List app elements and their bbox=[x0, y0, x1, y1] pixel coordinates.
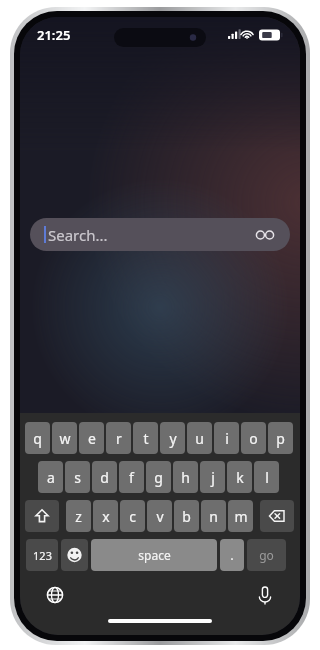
button[interactable]: Voice input bbox=[252, 582, 278, 608]
staticText: u bbox=[195, 429, 204, 448]
button[interactable]: a bbox=[38, 461, 63, 493]
staticText: t bbox=[143, 429, 149, 448]
staticText: n bbox=[209, 507, 218, 526]
button[interactable]: Backspace bbox=[260, 500, 294, 532]
button[interactable]: space bbox=[91, 539, 217, 571]
staticText: o bbox=[249, 429, 258, 448]
button[interactable]: . bbox=[220, 539, 244, 571]
staticText: h bbox=[181, 468, 190, 487]
staticText: e bbox=[88, 429, 96, 448]
staticText: i bbox=[225, 429, 229, 448]
staticText: 123 bbox=[33, 548, 52, 563]
button[interactable]: Shift bbox=[25, 500, 59, 532]
staticText: b bbox=[182, 507, 191, 526]
staticText: m bbox=[234, 507, 248, 526]
button[interactable]: p bbox=[268, 422, 293, 454]
button[interactable]: y bbox=[160, 422, 185, 454]
staticText: k bbox=[236, 468, 244, 487]
staticText: z bbox=[75, 507, 82, 526]
staticText: s bbox=[74, 468, 81, 487]
button[interactable]: Reader bbox=[254, 227, 276, 243]
button[interactable]: g bbox=[146, 461, 171, 493]
staticText: w bbox=[59, 429, 71, 448]
staticText: g bbox=[154, 468, 163, 487]
button[interactable]: j bbox=[200, 461, 225, 493]
staticText: x bbox=[102, 507, 110, 526]
staticText: y bbox=[169, 429, 177, 448]
button[interactable]: Emoji bbox=[61, 539, 88, 571]
button[interactable]: r bbox=[106, 422, 131, 454]
button[interactable]: b bbox=[174, 500, 199, 532]
staticText: l bbox=[265, 468, 269, 487]
staticText: . bbox=[230, 546, 234, 564]
button[interactable]: d bbox=[92, 461, 117, 493]
button[interactable]: t bbox=[133, 422, 158, 454]
staticText: a bbox=[47, 468, 55, 487]
button[interactable]: o bbox=[241, 422, 266, 454]
button[interactable]: n bbox=[201, 500, 226, 532]
button[interactable]: 123 bbox=[26, 539, 58, 571]
staticText: space bbox=[138, 547, 171, 563]
button[interactable]: x bbox=[93, 500, 118, 532]
button[interactable]: h bbox=[173, 461, 198, 493]
staticText: p bbox=[276, 429, 285, 448]
button[interactable]: u bbox=[187, 422, 212, 454]
button[interactable]: s bbox=[65, 461, 90, 493]
button[interactable]: v bbox=[147, 500, 172, 532]
button[interactable]: e bbox=[79, 422, 104, 454]
staticText: j bbox=[211, 468, 215, 487]
staticText: f bbox=[129, 468, 134, 487]
button[interactable]: m bbox=[228, 500, 253, 532]
button[interactable]: z bbox=[66, 500, 91, 532]
button[interactable]: c bbox=[120, 500, 145, 532]
staticText: d bbox=[100, 468, 109, 487]
staticText: Search... bbox=[48, 225, 108, 245]
staticText: go bbox=[259, 547, 274, 563]
button[interactable]: w bbox=[52, 422, 77, 454]
button[interactable]: Change keyboard language bbox=[42, 582, 68, 608]
staticText: 21:25 bbox=[37, 26, 71, 44]
staticText: q bbox=[33, 429, 42, 448]
button[interactable]: f bbox=[119, 461, 144, 493]
staticText: c bbox=[129, 507, 136, 526]
staticText: r bbox=[116, 429, 122, 448]
button[interactable]: Search... bbox=[30, 218, 290, 251]
button[interactable]: go bbox=[247, 539, 286, 571]
button[interactable]: q bbox=[25, 422, 50, 454]
button[interactable]: k bbox=[227, 461, 252, 493]
staticText: v bbox=[156, 507, 164, 526]
button[interactable]: i bbox=[214, 422, 239, 454]
button[interactable]: l bbox=[254, 461, 279, 493]
